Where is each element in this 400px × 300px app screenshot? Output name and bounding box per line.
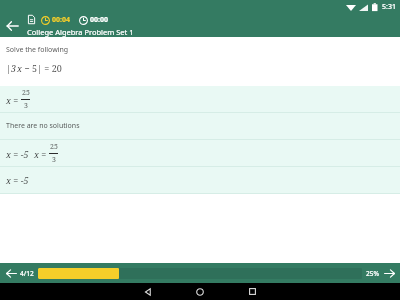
staticText: − 5| = 20: [22, 62, 62, 74]
button[interactable]: Questions: [27, 14, 36, 25]
staticText: 3: [52, 155, 56, 165]
button[interactable]: x =: [0, 86, 400, 112]
button[interactable]: x = −5: [0, 167, 400, 193]
staticText: 25%: [366, 269, 379, 278]
button[interactable]: [38, 268, 362, 279]
staticText: x =: [6, 94, 19, 106]
staticText: 25: [22, 88, 30, 98]
staticText: x: [17, 62, 22, 74]
staticText: 5:31: [382, 2, 396, 12]
staticText: |3: [6, 62, 17, 74]
staticText: Solve the following: [6, 45, 69, 55]
staticText: 00:00: [90, 15, 108, 25]
button[interactable]: Total timer: [79, 15, 108, 25]
staticText: 3: [24, 101, 28, 111]
staticText: College Algebra Problem Set 1: [27, 27, 134, 37]
button[interactable]: Question timer: [41, 15, 70, 25]
staticText: 25: [50, 142, 58, 152]
button[interactable]: Previous question: [4, 267, 18, 280]
button[interactable]: Back: [3, 17, 21, 35]
button[interactable]: Recent apps: [237, 283, 267, 300]
staticText: 4/12: [20, 269, 34, 278]
button[interactable]: There are no solutions: [0, 113, 400, 139]
staticText: x = −5: [6, 148, 29, 160]
staticText: x =: [34, 148, 47, 160]
button[interactable]: Home: [185, 283, 215, 300]
button[interactable]: Next question: [382, 267, 396, 280]
staticText: 00:04: [52, 15, 70, 25]
button[interactable]: x = −5: [0, 140, 400, 166]
button[interactable]: Back: [133, 283, 163, 300]
staticText: x = −5: [6, 174, 29, 186]
staticText: There are no solutions: [6, 121, 80, 131]
